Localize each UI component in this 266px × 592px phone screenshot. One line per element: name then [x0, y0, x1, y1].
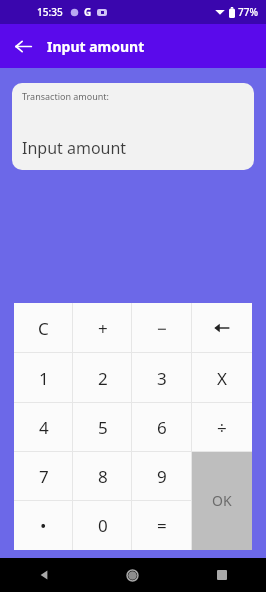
button[interactable]: Recent apps — [177, 558, 266, 592]
button[interactable]: Backspace — [192, 303, 252, 353]
button[interactable]: 5 — [73, 403, 132, 452]
button[interactable]: Home — [88, 558, 177, 592]
staticText: ÷ — [217, 416, 227, 439]
staticText: 3 — [157, 367, 167, 390]
staticText: C — [38, 317, 49, 340]
staticText: Transaction amount: — [22, 90, 109, 102]
staticText: X — [217, 367, 227, 390]
button[interactable]: C — [14, 303, 73, 353]
staticText: 7 — [39, 465, 49, 488]
staticText: = — [157, 514, 167, 537]
staticText: 9 — [157, 465, 167, 488]
button[interactable]: 0 — [73, 501, 132, 550]
staticText: 6 — [157, 416, 167, 439]
button[interactable] — [192, 452, 252, 501]
button[interactable]: 6 — [132, 403, 192, 452]
staticText: Input amount — [22, 137, 127, 159]
button[interactable]: 4 — [14, 403, 73, 452]
button[interactable]: Transaction amount: — [12, 83, 254, 170]
staticText: 77% — [238, 5, 258, 19]
staticText: 1 — [39, 367, 49, 390]
staticText: 8 — [98, 465, 108, 488]
staticText: G — [84, 5, 92, 19]
button[interactable]: = — [132, 501, 192, 550]
button[interactable]: 9 — [132, 452, 192, 501]
staticText: • — [40, 514, 47, 537]
button[interactable]: Back — [0, 558, 88, 592]
staticText: 5 — [98, 416, 108, 439]
button[interactable]: 7 — [14, 452, 73, 501]
button[interactable]: • — [14, 501, 73, 550]
button[interactable]: 2 — [73, 353, 132, 403]
button[interactable]: + — [73, 303, 132, 353]
button[interactable]: OK — [192, 451, 252, 550]
staticText: 0 — [98, 514, 108, 537]
staticText: − — [157, 317, 167, 340]
button[interactable]: 8 — [73, 452, 132, 501]
button[interactable] — [192, 501, 252, 550]
button[interactable]: ÷ — [192, 403, 252, 452]
button[interactable]: − — [132, 303, 192, 353]
button[interactable]: 1 — [14, 353, 73, 403]
button[interactable]: 3 — [132, 353, 192, 403]
button[interactable]: X — [192, 353, 252, 403]
staticText: 2 — [98, 367, 108, 390]
staticText: Input amount — [47, 37, 145, 56]
button[interactable]: Back — [7, 30, 39, 62]
staticText: + — [98, 317, 108, 340]
staticText: 15:35 — [37, 5, 63, 19]
staticText: 4 — [39, 416, 49, 439]
staticText: OK — [212, 491, 232, 510]
